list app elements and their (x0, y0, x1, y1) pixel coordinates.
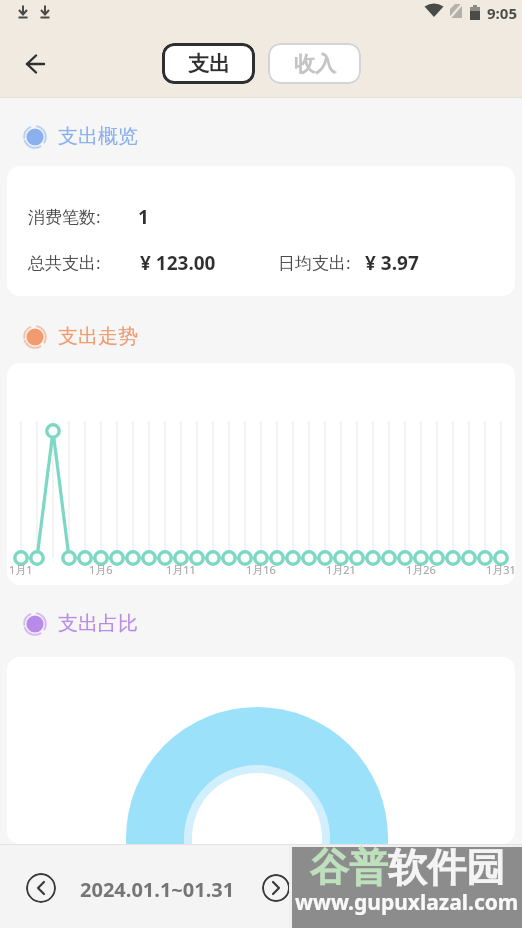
button[interactable] (25, 53, 47, 75)
staticText: 9:05 (487, 3, 517, 23)
staticText: 1月26 (406, 562, 436, 577)
staticText: 支出 (188, 51, 230, 77)
staticText: 支出走势 (58, 324, 138, 349)
staticText: ¥ 3.97 (365, 250, 419, 276)
staticText: 日均支出: (278, 251, 351, 274)
button[interactable]: 支出 (162, 43, 255, 84)
staticText: 1月1 (9, 562, 33, 577)
staticText: 1月21 (326, 562, 356, 577)
staticText: 1月11 (166, 562, 196, 577)
staticText: www.gupuxlazal.com (295, 888, 519, 917)
staticText: ¥ 123.00 (140, 250, 216, 276)
button[interactable]: 收入 (268, 43, 361, 84)
button[interactable] (26, 873, 56, 903)
staticText: 1 (138, 204, 149, 230)
staticText: 消费笔数: (28, 205, 101, 228)
staticText: 1月31 (486, 562, 515, 577)
staticText: 谷普软件园 (310, 843, 505, 892)
staticText: 支出占比 (58, 611, 138, 636)
staticText: 总共支出: (28, 251, 101, 274)
staticText: 1月16 (246, 562, 276, 577)
staticText: 支出概览 (58, 124, 138, 149)
staticText: 收入 (294, 51, 336, 77)
staticText: 2024.01.1~01.31 (80, 876, 235, 903)
button[interactable] (262, 874, 290, 902)
staticText: 1月6 (89, 562, 113, 577)
